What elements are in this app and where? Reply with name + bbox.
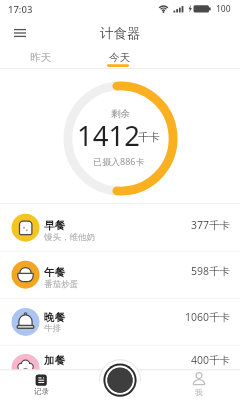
button[interactable] (0, 298, 240, 345)
staticText: 番茄炒蛋 (44, 279, 78, 290)
staticText: 晚餐 (44, 311, 65, 324)
staticText: 17:03 (8, 3, 33, 16)
staticText: 剩余 (111, 108, 130, 120)
button[interactable] (168, 371, 230, 400)
button[interactable] (10, 371, 72, 400)
button[interactable]: 今天 (89, 49, 149, 65)
staticText: 牛排 (44, 323, 61, 334)
button[interactable] (8, 24, 38, 44)
staticText: 我 (195, 388, 203, 397)
staticText: 100 (216, 3, 231, 15)
staticText: 馒头，维他奶 (44, 232, 95, 243)
staticText: 昨天 (30, 51, 51, 64)
button[interactable] (103, 363, 137, 397)
button[interactable]: 昨天 (10, 49, 70, 65)
staticText: 1412 (77, 117, 140, 154)
staticText: 已摄入886卡 (93, 155, 145, 167)
staticText: 千卡 (138, 130, 160, 144)
staticText: 计食器 (100, 25, 141, 41)
staticText: 598千卡 (191, 264, 231, 278)
staticText: 今天 (109, 51, 130, 64)
staticText: 记录 (34, 387, 49, 396)
staticText: 加餐 (44, 354, 65, 367)
button[interactable] (0, 251, 240, 298)
staticText: 400千卡 (191, 353, 231, 367)
staticText: 1060千卡 (185, 310, 231, 324)
staticText: 午餐 (44, 266, 65, 279)
button[interactable] (0, 345, 240, 392)
staticText: 377千卡 (191, 218, 231, 232)
staticText: 早餐 (44, 219, 65, 232)
button[interactable] (0, 204, 240, 251)
